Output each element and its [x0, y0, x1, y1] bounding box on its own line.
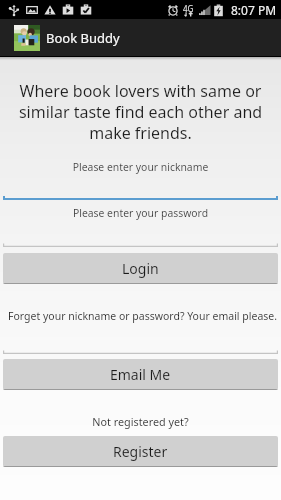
staticText: Forget your nickname or password? Your e…	[8, 309, 278, 323]
staticText: Please enter your password	[0, 206, 281, 220]
staticText: Login	[122, 259, 159, 278]
button[interactable]	[0, 329, 281, 355]
staticText: 4G	[183, 3, 194, 14]
staticText: 8:07 PM	[231, 2, 277, 18]
staticText: Please enter your nickname	[0, 160, 281, 174]
button[interactable]: Register	[3, 436, 278, 467]
button[interactable]: Login	[3, 253, 278, 284]
other: Book Buddy	[14, 25, 40, 51]
staticText: Not registered yet?	[0, 414, 281, 429]
button[interactable]: Please enter your nickname	[0, 160, 281, 201]
staticText: Where book lovers with same or similar t…	[12, 80, 269, 144]
staticText: Email Me	[110, 365, 171, 384]
staticText: Register	[113, 442, 168, 461]
button[interactable]: Email Me	[3, 359, 278, 390]
button[interactable]: Please enter your password	[0, 206, 281, 248]
staticText: Book Buddy	[46, 29, 120, 47]
